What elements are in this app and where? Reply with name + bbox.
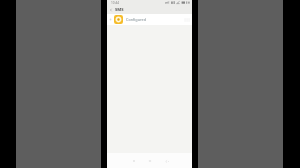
staticText: SMS	[115, 7, 124, 13]
staticText: Configured	[126, 17, 146, 22]
staticText: 10:44	[111, 1, 120, 5]
button[interactable]: Configured	[107, 14, 192, 25]
other: Back	[109, 8, 113, 12]
button[interactable]: Back	[107, 5, 192, 14]
